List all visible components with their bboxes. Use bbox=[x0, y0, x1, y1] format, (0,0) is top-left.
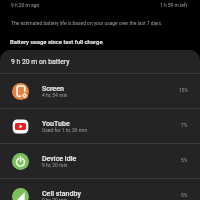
staticText: Used for 1 hr, 26 min bbox=[42, 127, 88, 133]
staticText: 5% bbox=[181, 193, 188, 199]
staticText: 9 h 20 m on battery bbox=[11, 58, 70, 66]
staticText: 7% bbox=[181, 123, 188, 129]
staticText: 9 hr, 20 min bbox=[42, 197, 68, 200]
staticText: Device idle bbox=[42, 154, 77, 162]
staticText: Battery usage since last full charge bbox=[10, 39, 103, 46]
button[interactable]: Cell standby bbox=[0, 179, 200, 200]
staticText: 5% bbox=[181, 158, 188, 164]
staticText: 4 hr, 54 min bbox=[42, 92, 68, 98]
staticText: The estimated battery life is based on y… bbox=[11, 20, 163, 26]
button[interactable]: Screen bbox=[0, 74, 200, 108]
staticText: YouTube bbox=[42, 119, 70, 127]
staticText: Screen bbox=[42, 84, 64, 92]
staticText: 1 h 59 m left bbox=[160, 2, 188, 8]
button[interactable]: YouTube bbox=[0, 109, 200, 143]
button[interactable]: Device idle bbox=[0, 144, 200, 178]
staticText: 9 h 20 m ago bbox=[11, 2, 40, 8]
staticText: Cell standby bbox=[42, 189, 81, 197]
staticText: 9 hr, 20 min bbox=[42, 162, 68, 168]
staticText: 15% bbox=[179, 88, 188, 94]
